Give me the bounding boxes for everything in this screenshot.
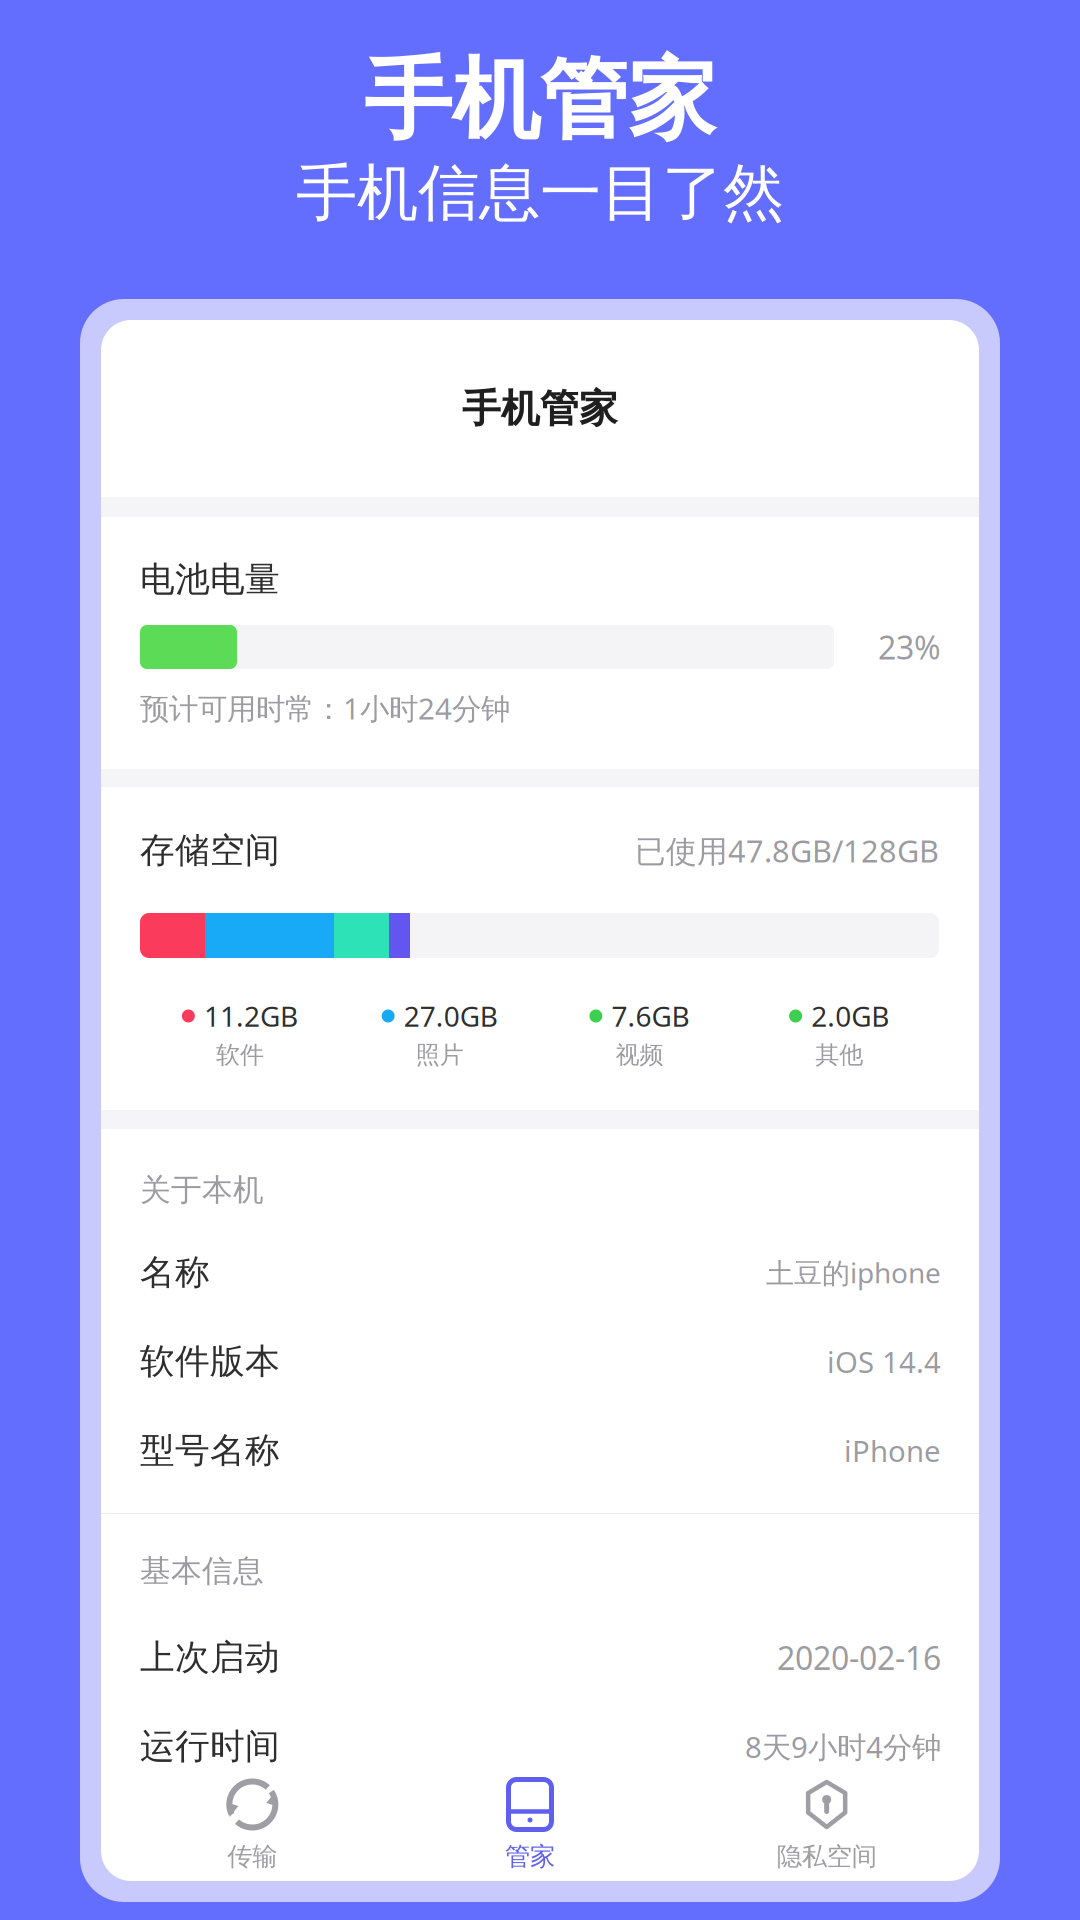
staticText: 2.0GB xyxy=(811,997,889,1035)
staticText: 名称 xyxy=(140,1251,210,1294)
staticText: 照片 xyxy=(416,1040,464,1070)
staticText: 传输 xyxy=(227,1841,277,1872)
staticText: 基本信息 xyxy=(140,1552,264,1590)
staticText: iPhone xyxy=(844,1431,941,1470)
button[interactable]: 管家 xyxy=(384,1778,676,1869)
staticText: 手机信息一目了然 xyxy=(296,155,784,231)
staticText: 型号名称 xyxy=(140,1429,280,1472)
staticText: 运行时间 xyxy=(140,1725,280,1768)
staticText: 电池电量 xyxy=(140,558,280,601)
button[interactable]: 名称 xyxy=(101,1228,979,1317)
staticText: 2020-02-16 xyxy=(777,1636,941,1679)
staticText: 8天9小时4分钟 xyxy=(745,1727,941,1766)
staticText: 土豆的iphone xyxy=(766,1254,941,1291)
staticText: 7.6GB xyxy=(611,997,689,1035)
staticText: 软件 xyxy=(216,1040,264,1070)
staticText: 27.0GB xyxy=(404,997,498,1035)
staticText: 已使用47.8GB/128GB xyxy=(635,830,939,871)
button[interactable]: 隐私空间 xyxy=(680,1778,973,1869)
button[interactable]: 传输 xyxy=(106,1778,399,1869)
button[interactable]: 型号名称 xyxy=(101,1406,979,1495)
staticText: 软件版本 xyxy=(140,1340,280,1383)
staticText: 手机管家 xyxy=(364,46,716,154)
staticText: 预计可用时常：1小时24分钟 xyxy=(140,688,510,727)
button[interactable]: 上次启动 xyxy=(101,1613,979,1702)
staticText: 上次启动 xyxy=(140,1636,280,1679)
staticText: iOS 14.4 xyxy=(827,1342,941,1381)
staticText: 11.2GB xyxy=(204,997,298,1035)
staticText: 手机管家 xyxy=(462,385,618,432)
staticText: 视频 xyxy=(615,1040,663,1070)
staticText: 关于本机 xyxy=(140,1171,264,1209)
staticText: 其他 xyxy=(815,1040,863,1070)
button[interactable]: 软件版本 xyxy=(101,1317,979,1406)
staticText: 管家 xyxy=(505,1841,555,1872)
staticText: 存储空间 xyxy=(140,829,280,872)
staticText: 隐私空间 xyxy=(777,1841,877,1872)
staticText: 23% xyxy=(878,626,941,668)
button[interactable]: 运行时间 xyxy=(101,1702,979,1791)
